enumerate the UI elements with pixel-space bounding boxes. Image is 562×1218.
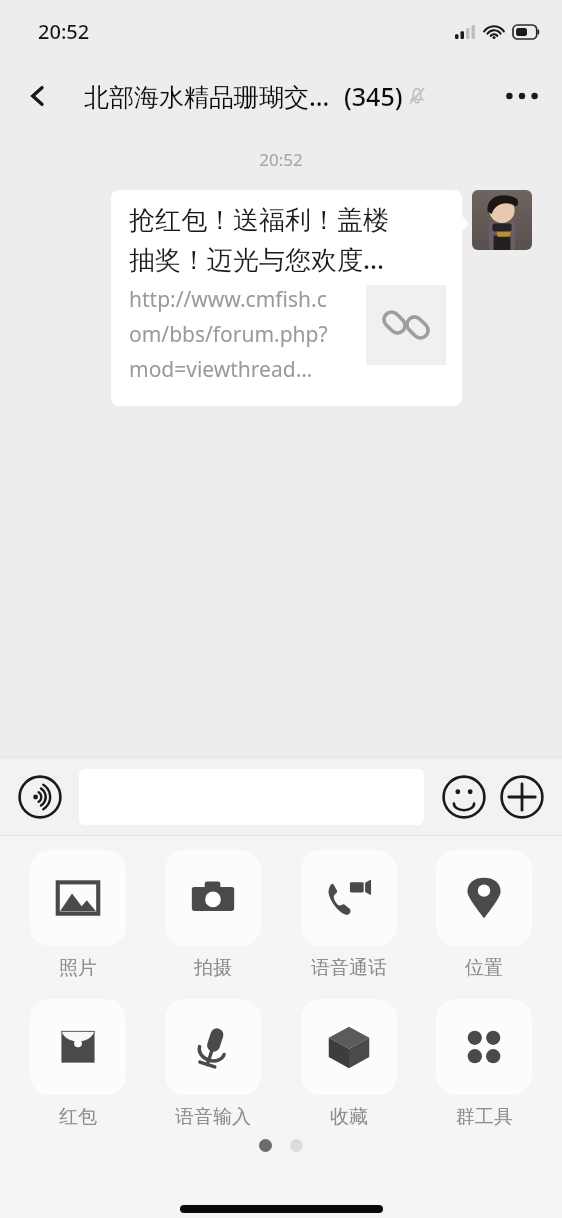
staticText: 20:52 <box>38 18 90 45</box>
staticText: 照片 <box>59 956 97 980</box>
staticText: 20:52 <box>0 148 562 171</box>
staticText: 北部海水精品珊瑚交… <box>84 79 330 113</box>
staticText: 语音输入 <box>175 1105 251 1129</box>
button[interactable]: 群工具 <box>430 999 538 1129</box>
button[interactable]: 位置 <box>430 850 538 980</box>
staticText: 群工具 <box>456 1105 513 1129</box>
button[interactable]: 语音通话 <box>295 850 403 980</box>
button[interactable]: 红包 <box>24 999 132 1129</box>
button[interactable]: 拍摄 <box>159 850 267 980</box>
staticText: http://www.cmfish.c om/bbs/forum.php? mo… <box>129 285 362 384</box>
button[interactable]: 语音输入 <box>159 999 267 1129</box>
button[interactable]: 抢红包！送福利！盖楼 抽奖！迈光与您欢度… <box>111 190 462 406</box>
staticText: (345) <box>344 79 403 113</box>
staticText: 红包 <box>59 1105 97 1129</box>
button[interactable]: Back <box>10 68 66 124</box>
staticText: 拍摄 <box>194 956 232 980</box>
staticText: 语音通话 <box>311 956 387 980</box>
button[interactable]: More options <box>494 68 550 124</box>
button[interactable]: 照片 <box>24 850 132 980</box>
button[interactable]: Voice input <box>14 771 66 823</box>
button[interactable]: Sender avatar <box>472 190 532 250</box>
button[interactable]: 收藏 <box>295 999 403 1129</box>
staticText: 位置 <box>465 956 503 980</box>
button[interactable]: Emoji <box>438 771 490 823</box>
button[interactable]: More functions <box>496 771 548 823</box>
staticText: 抢红包！送福利！盖楼 抽奖！迈光与您欢度… <box>129 204 389 277</box>
staticText: 收藏 <box>330 1105 368 1129</box>
